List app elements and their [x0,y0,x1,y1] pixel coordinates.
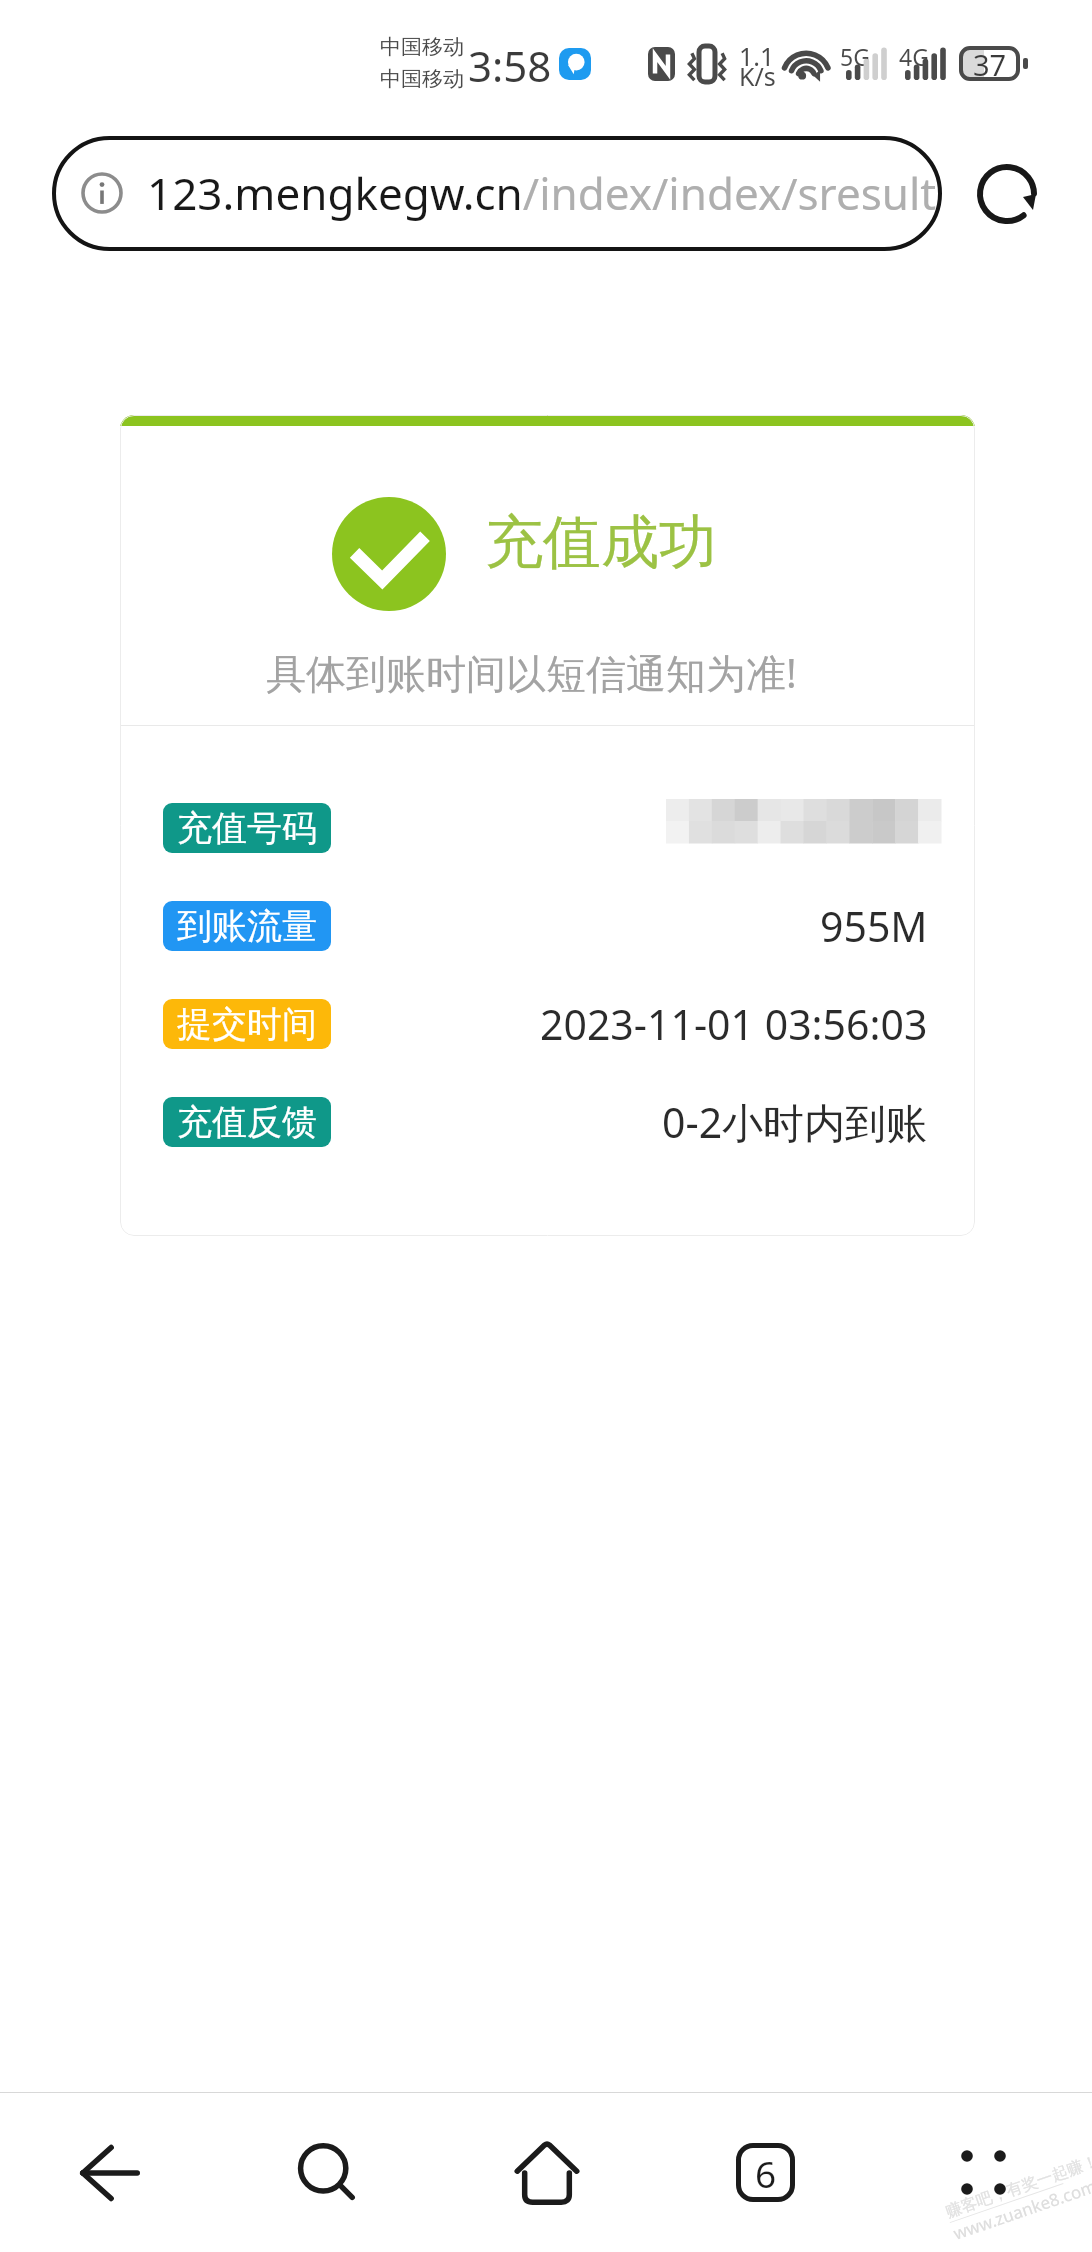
staticText: 6 [755,2148,777,2198]
staticText: 具体到账时间以短信通知为准! [120,645,959,700]
staticText: 4G [899,41,929,72]
button[interactable]: Search [219,2093,438,2252]
staticText: 中国移动 [380,34,464,60]
staticText: K/s [739,59,776,93]
staticText: 赚客吧，有奖一起赚！ [943,2151,1092,2222]
button[interactable]: Tabs, 6 open [656,2093,874,2252]
staticText: 3:58 [468,37,552,94]
staticText: 5G [840,41,870,72]
staticText: 123.mengkegw.cn/index/index/sresult [147,163,937,223]
button[interactable]: 123.mengkegw.cn/index/index/sresult [52,136,942,251]
button[interactable]: Home [438,2093,656,2252]
button[interactable]: Back [0,2093,219,2252]
staticText: 1.1 [739,39,775,73]
staticText: 充值反馈 [177,1100,317,1144]
staticText: 2023-11-01 03:56:03 [540,996,928,1052]
staticText: 37 [973,45,1007,80]
staticText: 充值号码 [177,806,317,850]
staticText: 提交时间 [177,1002,317,1046]
staticText: 充值成功 [485,506,717,579]
staticText: 到账流量 [177,904,317,948]
staticText: www.zuanke8.com [950,2174,1092,2245]
staticText: 955M [820,898,928,954]
staticText: 中国移动 [380,66,464,92]
button[interactable]: Reload [959,146,1055,242]
button[interactable]: More options [874,2093,1092,2252]
staticText: 0-2小时内到账 [662,1094,928,1150]
